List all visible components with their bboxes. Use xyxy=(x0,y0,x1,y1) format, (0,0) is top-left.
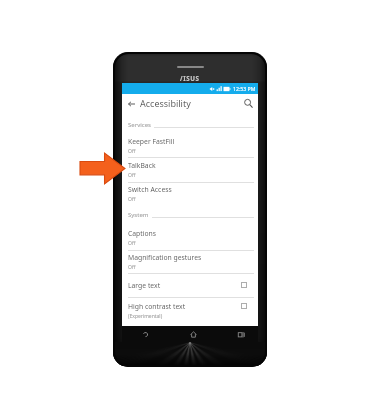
button[interactable]: Switch Access xyxy=(122,185,258,207)
button[interactable]: Home xyxy=(185,326,202,342)
button[interactable]: High contrast text xyxy=(122,302,258,327)
staticText: System xyxy=(128,211,149,219)
button[interactable]: Back xyxy=(137,326,154,342)
staticText: (Experimental) xyxy=(128,313,163,320)
staticText: Off xyxy=(128,172,136,179)
button[interactable]: Navigate up xyxy=(124,96,139,111)
staticText: Off xyxy=(128,240,136,247)
other: Pointer to TalkBack xyxy=(80,153,125,184)
staticText: Services xyxy=(128,121,151,129)
button[interactable]: Search xyxy=(241,96,256,111)
button[interactable]: Recent apps xyxy=(233,326,250,342)
staticText: Off xyxy=(128,196,136,203)
staticText: Captions xyxy=(128,229,157,238)
staticText: 12:53 PM xyxy=(233,85,256,92)
staticText: Off xyxy=(128,264,136,271)
button[interactable]: Captions xyxy=(122,229,258,250)
staticText: Off xyxy=(128,148,136,155)
staticText: Accessibility xyxy=(140,97,191,109)
staticText: Magnification gestures xyxy=(128,253,202,262)
staticText: Switch Access xyxy=(128,185,172,194)
button[interactable]: TalkBack xyxy=(122,161,258,182)
staticText: /ISUS xyxy=(180,74,200,82)
staticText: High contrast text xyxy=(128,302,186,311)
staticText: TalkBack xyxy=(128,161,156,170)
staticText: Keeper FastFill xyxy=(128,137,175,146)
staticText: Large text xyxy=(128,281,161,290)
button[interactable]: Keeper FastFill xyxy=(122,137,258,157)
button[interactable]: Magnification gestures xyxy=(122,253,258,273)
button[interactable]: Large text xyxy=(122,281,258,297)
